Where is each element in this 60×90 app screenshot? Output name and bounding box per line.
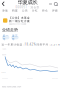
staticText: 2023-03 xyxy=(2,77,8,79)
staticText: 评级 xyxy=(52,9,58,12)
staticText: 净值 xyxy=(2,9,8,12)
staticText: 近一年 xyxy=(3,34,9,41)
staticText: 2024-03 xyxy=(52,77,58,79)
staticText: 近一年累计收益 -18.42% 同类平均 -9.51% xyxy=(1,43,59,46)
staticText: 2023-09 xyxy=(27,77,33,79)
staticText: 12.0% xyxy=(2,48,6,50)
button[interactable]: 【公告】本基金新一期分红方案 xyxy=(0,15,60,26)
button[interactable]: Share xyxy=(48,0,53,7)
button[interactable]: 近三年 xyxy=(11,36,19,39)
staticText: 0.00% xyxy=(2,54,6,56)
staticText: 业绩走势 xyxy=(2,27,18,32)
staticText: 000051 · 混合型 xyxy=(15,5,39,9)
button[interactable]: 净值 xyxy=(0,8,10,13)
button[interactable]: 分红 xyxy=(30,8,40,13)
button[interactable]: Search xyxy=(53,0,58,7)
staticText: 权益登记日 2024-03-18 · 点击查看 xyxy=(9,23,26,25)
staticText: -20.0% xyxy=(1,71,5,73)
staticText: 近三年 xyxy=(12,34,18,41)
staticText: 数据来源：基金管理人定期披露，仅供参考 xyxy=(2,86,21,87)
staticText: 【公告】本基金新一期分红方案 xyxy=(9,16,30,23)
button[interactable]: 公告 xyxy=(20,8,30,13)
button[interactable]: Back xyxy=(0,0,7,7)
staticText: 华夏成长 xyxy=(17,0,37,6)
button[interactable]: 持仓 xyxy=(40,8,50,13)
button[interactable]: 档案 xyxy=(10,8,20,13)
staticText: 分红 xyxy=(32,9,38,12)
staticText: 档案 xyxy=(12,9,18,12)
button[interactable]: 评级 xyxy=(50,8,60,13)
button[interactable]: 近一年 xyxy=(2,36,9,39)
staticText: 持仓 xyxy=(42,9,48,12)
staticText: 公告 xyxy=(22,9,28,12)
